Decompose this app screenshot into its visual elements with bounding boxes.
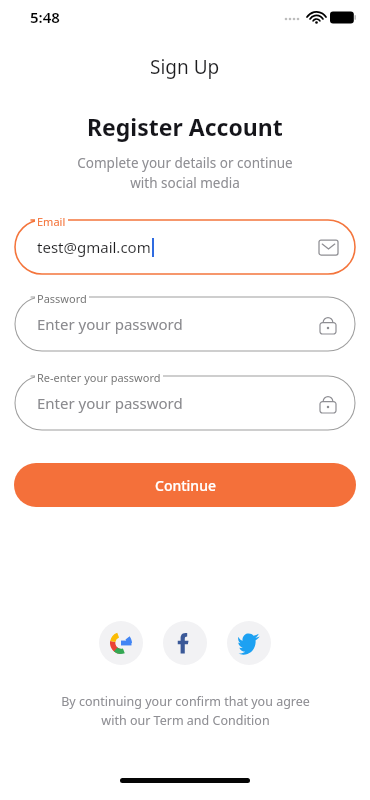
staticText: Email	[37, 214, 66, 229]
button[interactable]: Re-enter your password	[15, 376, 355, 430]
button[interactable]: Sign up with Facebook	[163, 621, 207, 665]
staticText: Continue	[155, 476, 216, 495]
button[interactable]: Email	[15, 220, 355, 274]
button[interactable]: Continue	[14, 463, 356, 507]
staticText: Password	[37, 291, 87, 306]
button[interactable]: Sign up with Twitter	[227, 621, 271, 665]
staticText: By continuing your confirm that you agre…	[61, 693, 310, 729]
staticText: test@gmail.com	[37, 237, 151, 257]
button[interactable]: Password	[15, 297, 355, 351]
staticText: Sign Up	[150, 54, 220, 80]
staticText: Enter your password	[37, 393, 183, 413]
staticText: Enter your password	[37, 314, 183, 334]
button[interactable]: Sign up with Google	[99, 621, 143, 665]
staticText: Register Account	[87, 111, 283, 142]
staticText: Complete your details or continue with s…	[77, 154, 293, 192]
staticText: 5:48	[30, 7, 60, 27]
staticText: Re-enter your password	[37, 370, 161, 385]
